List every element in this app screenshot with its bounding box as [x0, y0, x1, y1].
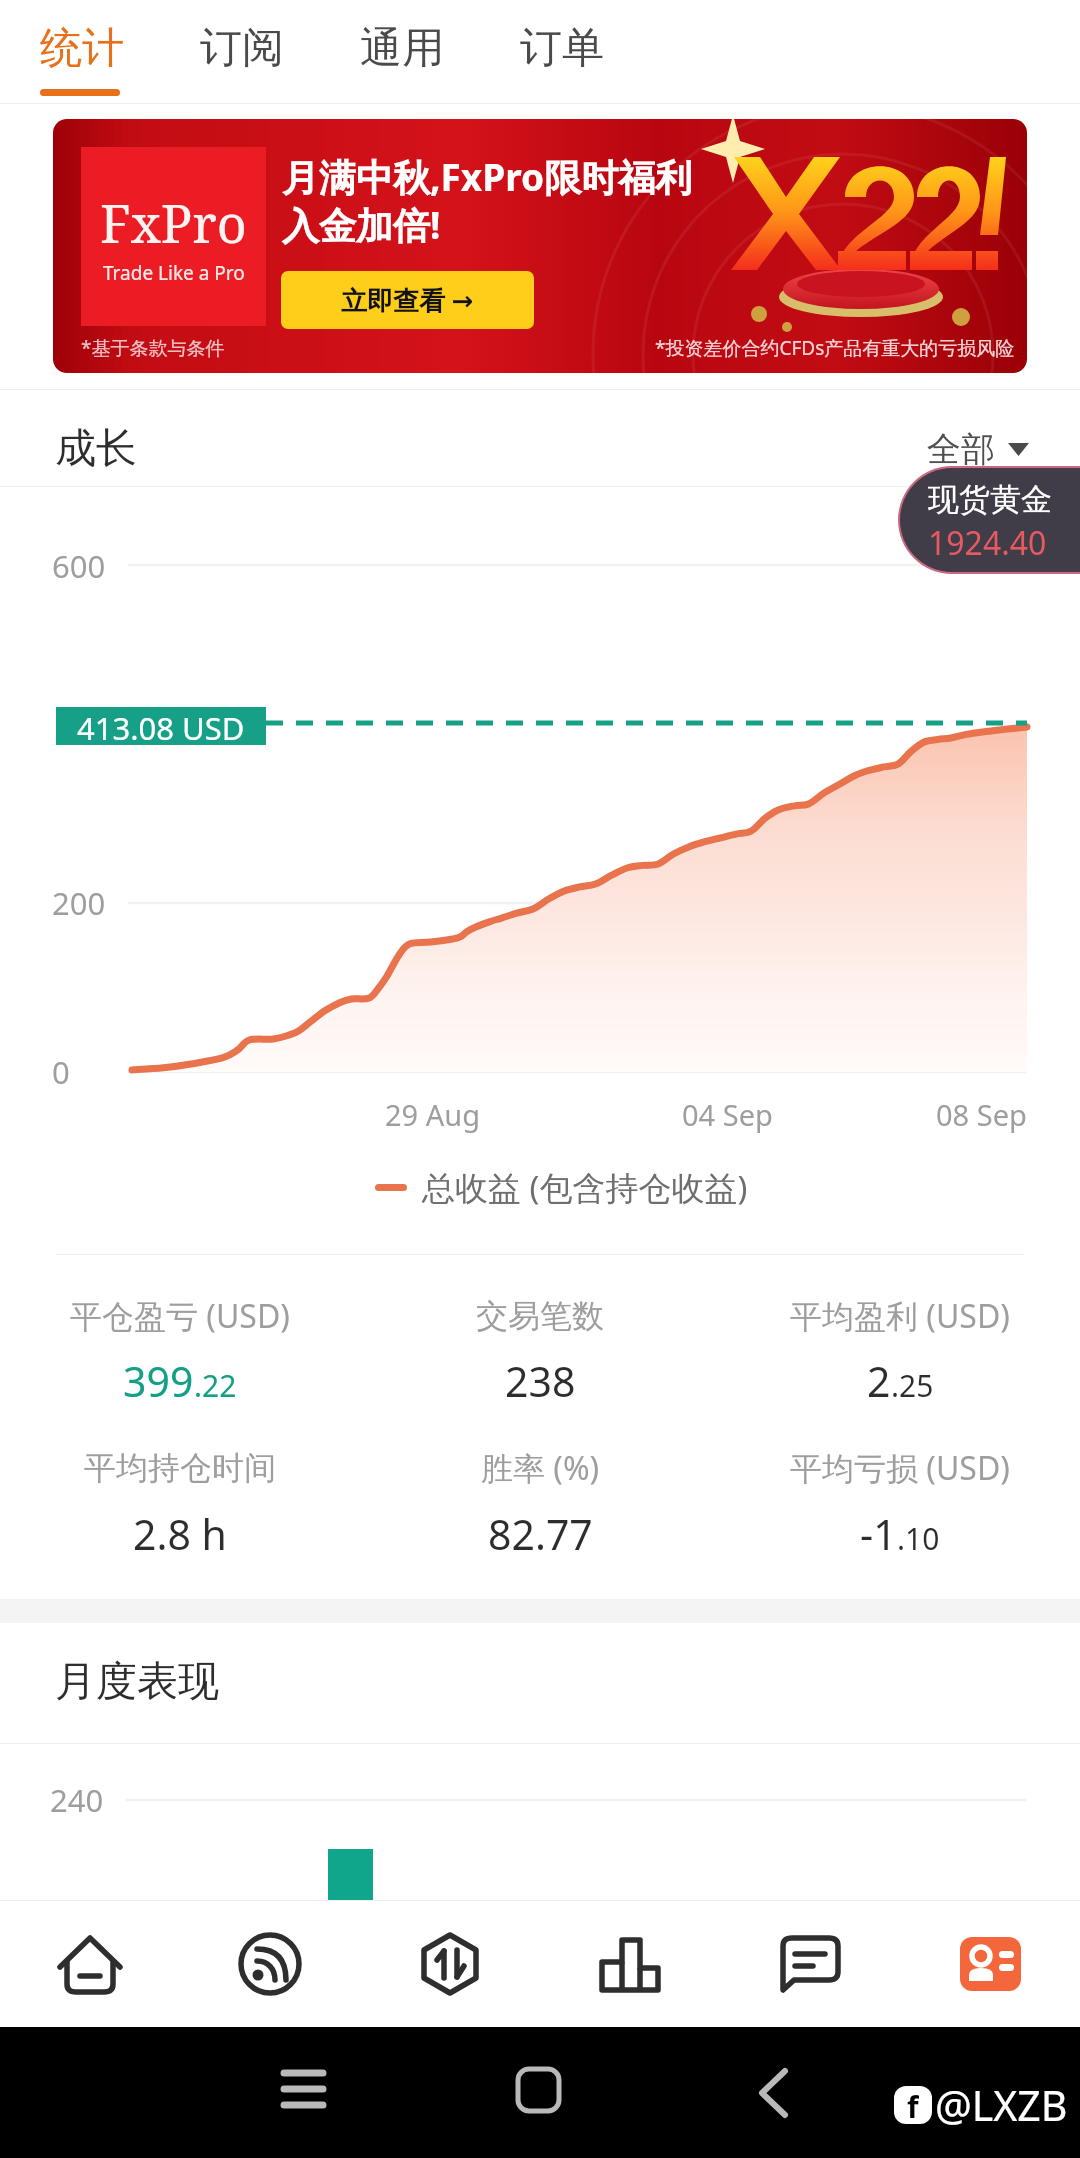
staticText: 1924.40: [928, 521, 1047, 565]
staticText: *投资差价合约CFDs产品有重大的亏损风险: [655, 335, 1015, 361]
staticText: 通用: [360, 22, 444, 75]
button[interactable]: Trade: [360, 1900, 540, 2027]
staticText: 订单: [520, 22, 604, 75]
button[interactable]: 订阅: [160, 0, 320, 103]
staticText: 200: [52, 882, 106, 924]
button[interactable]: 订单: [480, 0, 640, 103]
staticText: 入金加倍!: [282, 199, 441, 250]
staticText: 413.08 USD: [77, 707, 245, 745]
button[interactable]: 通用: [320, 0, 480, 103]
staticText: Trade Like a Pro: [103, 260, 245, 286]
staticText: 2.8 h: [133, 1506, 227, 1562]
button[interactable]: Home: [0, 1900, 180, 2027]
staticText: 600: [52, 545, 106, 587]
staticText: 平仓盈亏 (USD): [70, 1294, 290, 1338]
staticText: 月满中秋,FxPro限时福利: [282, 151, 693, 202]
staticText: 成长: [55, 423, 137, 475]
staticText: 平均亏损 (USD): [790, 1446, 1010, 1490]
staticText: 2: [867, 1353, 891, 1409]
staticText: 平均盈利 (USD): [790, 1294, 1010, 1338]
staticText: FxPro: [100, 187, 247, 258]
staticText: 交易笔数: [476, 1296, 604, 1336]
staticText: 平均持仓时间: [84, 1448, 276, 1488]
button[interactable]: Statistics: [540, 1900, 720, 2027]
staticText: 月度表现: [55, 1656, 219, 1708]
staticText: 0: [52, 1051, 70, 1093]
staticText: .10: [897, 1518, 940, 1559]
staticText: @LXZB: [935, 2077, 1068, 2133]
staticText: .22: [194, 1365, 237, 1406]
staticText: 240: [50, 1779, 104, 1821]
staticText: 现货黄金: [928, 480, 1052, 519]
staticText: 82.77: [488, 1506, 593, 1562]
staticText: *基于条款与条件: [81, 335, 225, 361]
staticText: 全部: [927, 428, 995, 471]
staticText: -1: [860, 1506, 897, 1562]
staticText: 胜率 (%): [481, 1446, 600, 1490]
button[interactable]: 立即查看 →: [281, 271, 534, 329]
staticText: 29 Aug: [385, 1095, 481, 1134]
button[interactable]: FxPro: [53, 119, 1027, 373]
staticText: 立即查看 →: [341, 282, 474, 318]
button[interactable]: Feed: [180, 1900, 360, 2027]
button[interactable]: Messages: [720, 1900, 900, 2027]
staticText: 238: [505, 1353, 576, 1409]
staticText: 统计: [40, 22, 124, 75]
staticText: 08 Sep: [936, 1095, 1027, 1134]
staticText: 总收益 (包含持仓收益): [422, 1165, 748, 1210]
button[interactable]: 统计: [0, 0, 160, 103]
button[interactable]: 全部: [927, 418, 1029, 480]
staticText: .25: [891, 1365, 934, 1406]
button[interactable]: Profile: [900, 1900, 1080, 2027]
staticText: 订阅: [200, 22, 284, 75]
staticText: 04 Sep: [682, 1095, 773, 1134]
staticText: 399: [123, 1353, 194, 1409]
staticText: f: [907, 2086, 919, 2124]
